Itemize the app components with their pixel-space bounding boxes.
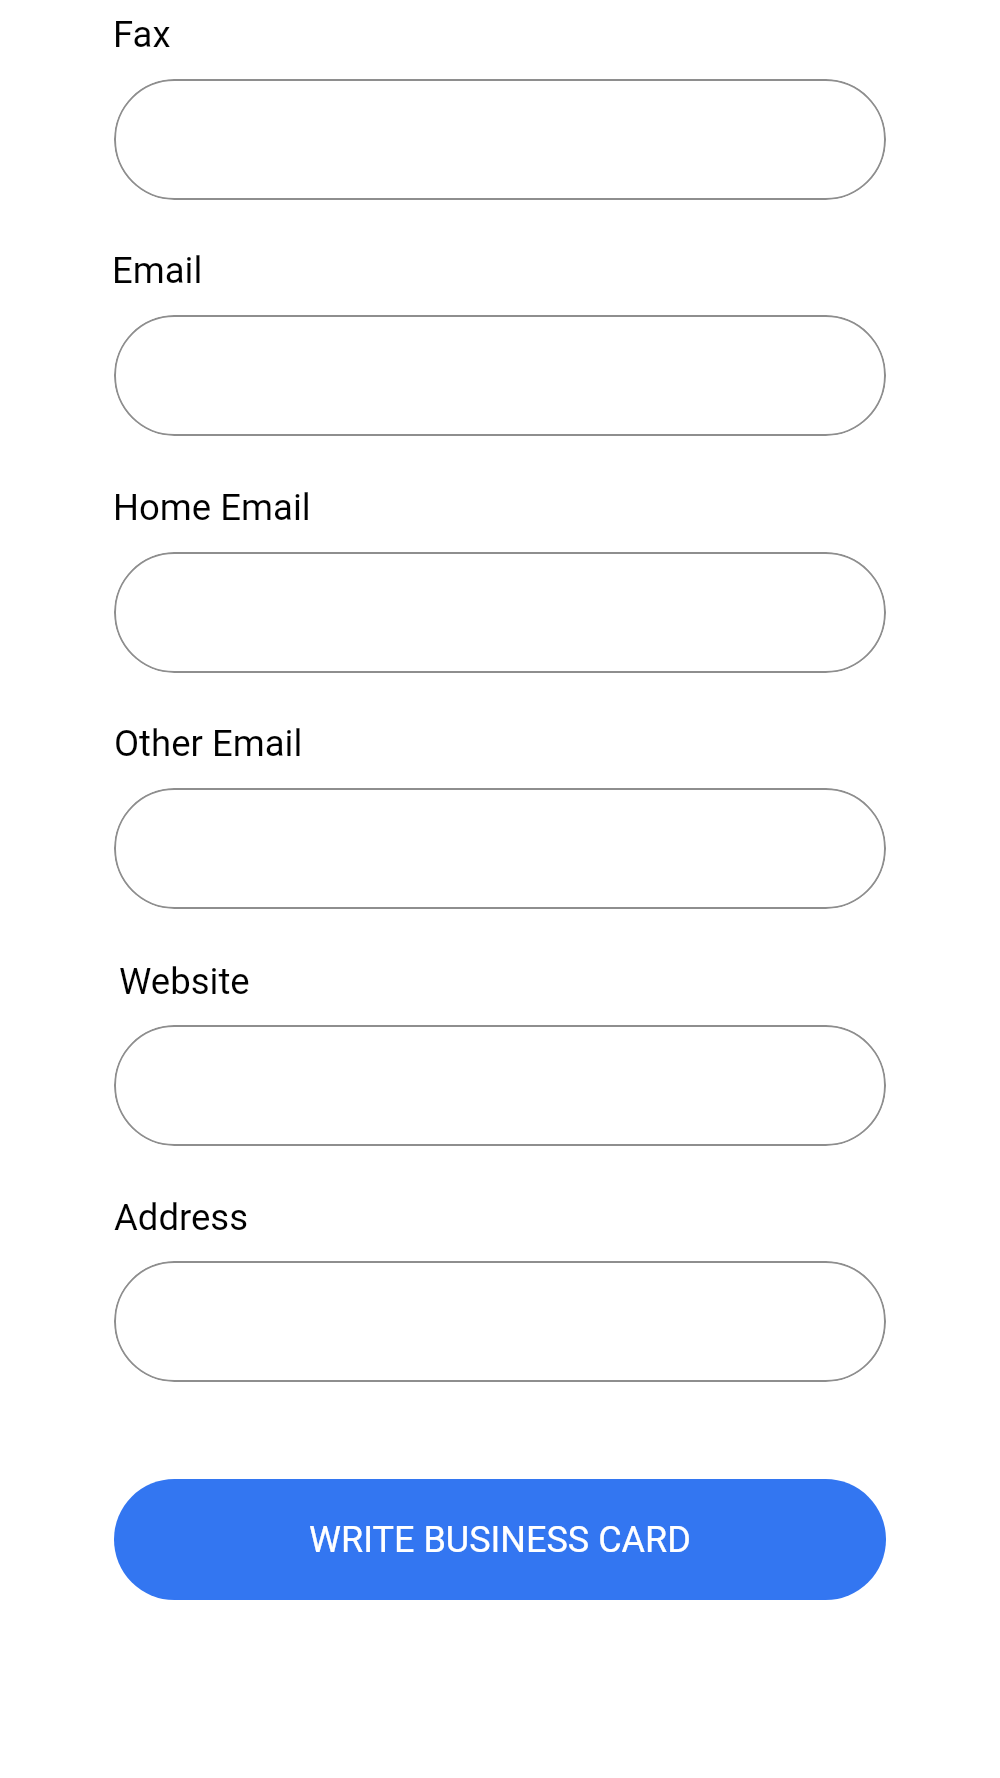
staticText: Website: [119, 960, 250, 1003]
button[interactable]: Address: [114, 1261, 886, 1382]
staticText: Other Email: [114, 722, 303, 765]
button[interactable]: WRITE BUSINESS CARD: [114, 1479, 886, 1600]
button[interactable]: Home Email: [114, 552, 886, 673]
staticText: Address: [114, 1196, 249, 1239]
staticText: Fax: [113, 13, 171, 56]
staticText: WRITE BUSINESS CARD: [309, 1519, 691, 1561]
button[interactable]: Website: [114, 1025, 886, 1146]
staticText: Home Email: [113, 486, 311, 529]
button[interactable]: Other Email: [114, 788, 886, 909]
staticText: Email: [112, 249, 203, 292]
button[interactable]: Fax: [114, 79, 886, 200]
button[interactable]: Email: [114, 315, 886, 436]
